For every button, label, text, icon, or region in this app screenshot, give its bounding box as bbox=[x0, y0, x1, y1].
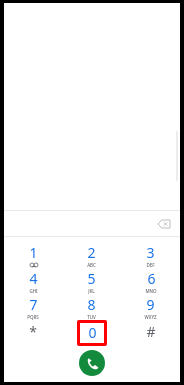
staticText: 9 bbox=[146, 295, 155, 314]
staticText: PQRS bbox=[27, 314, 39, 320]
staticText: ABC bbox=[87, 262, 96, 268]
button[interactable]: 3 bbox=[121, 242, 180, 268]
staticText: 2 bbox=[87, 243, 96, 262]
staticText: 0 bbox=[88, 323, 97, 342]
button[interactable]: Call bbox=[79, 350, 105, 376]
staticText: WXYZ bbox=[144, 314, 157, 320]
button[interactable]: 7 bbox=[4, 294, 62, 320]
button[interactable]: 9 bbox=[121, 294, 180, 320]
button[interactable]: 1 bbox=[4, 242, 62, 268]
button[interactable]: 8 bbox=[62, 294, 121, 320]
button[interactable]: 0 bbox=[62, 320, 121, 346]
staticText: 5 bbox=[87, 269, 96, 288]
staticText: DEF bbox=[146, 262, 155, 268]
staticText: GHI bbox=[29, 288, 38, 294]
button[interactable]: 2 bbox=[62, 242, 121, 268]
staticText: JKL bbox=[88, 288, 95, 294]
staticText: TUV bbox=[87, 314, 96, 320]
staticText: 3 bbox=[146, 243, 155, 262]
button[interactable]: * bbox=[4, 320, 62, 346]
button[interactable]: Backspace bbox=[156, 216, 172, 232]
staticText: 1 bbox=[29, 243, 38, 262]
staticText: MNO bbox=[145, 288, 157, 294]
button[interactable]: # bbox=[121, 320, 180, 346]
staticText: 6 bbox=[147, 269, 156, 288]
staticText: # bbox=[146, 322, 156, 341]
staticText: 7 bbox=[29, 295, 38, 314]
button[interactable]: 6 bbox=[121, 268, 180, 294]
staticText: 4 bbox=[29, 269, 38, 288]
staticText: 8 bbox=[87, 295, 96, 314]
button[interactable]: 4 bbox=[4, 268, 62, 294]
button[interactable]: 5 bbox=[62, 268, 121, 294]
staticText: * bbox=[29, 322, 37, 341]
